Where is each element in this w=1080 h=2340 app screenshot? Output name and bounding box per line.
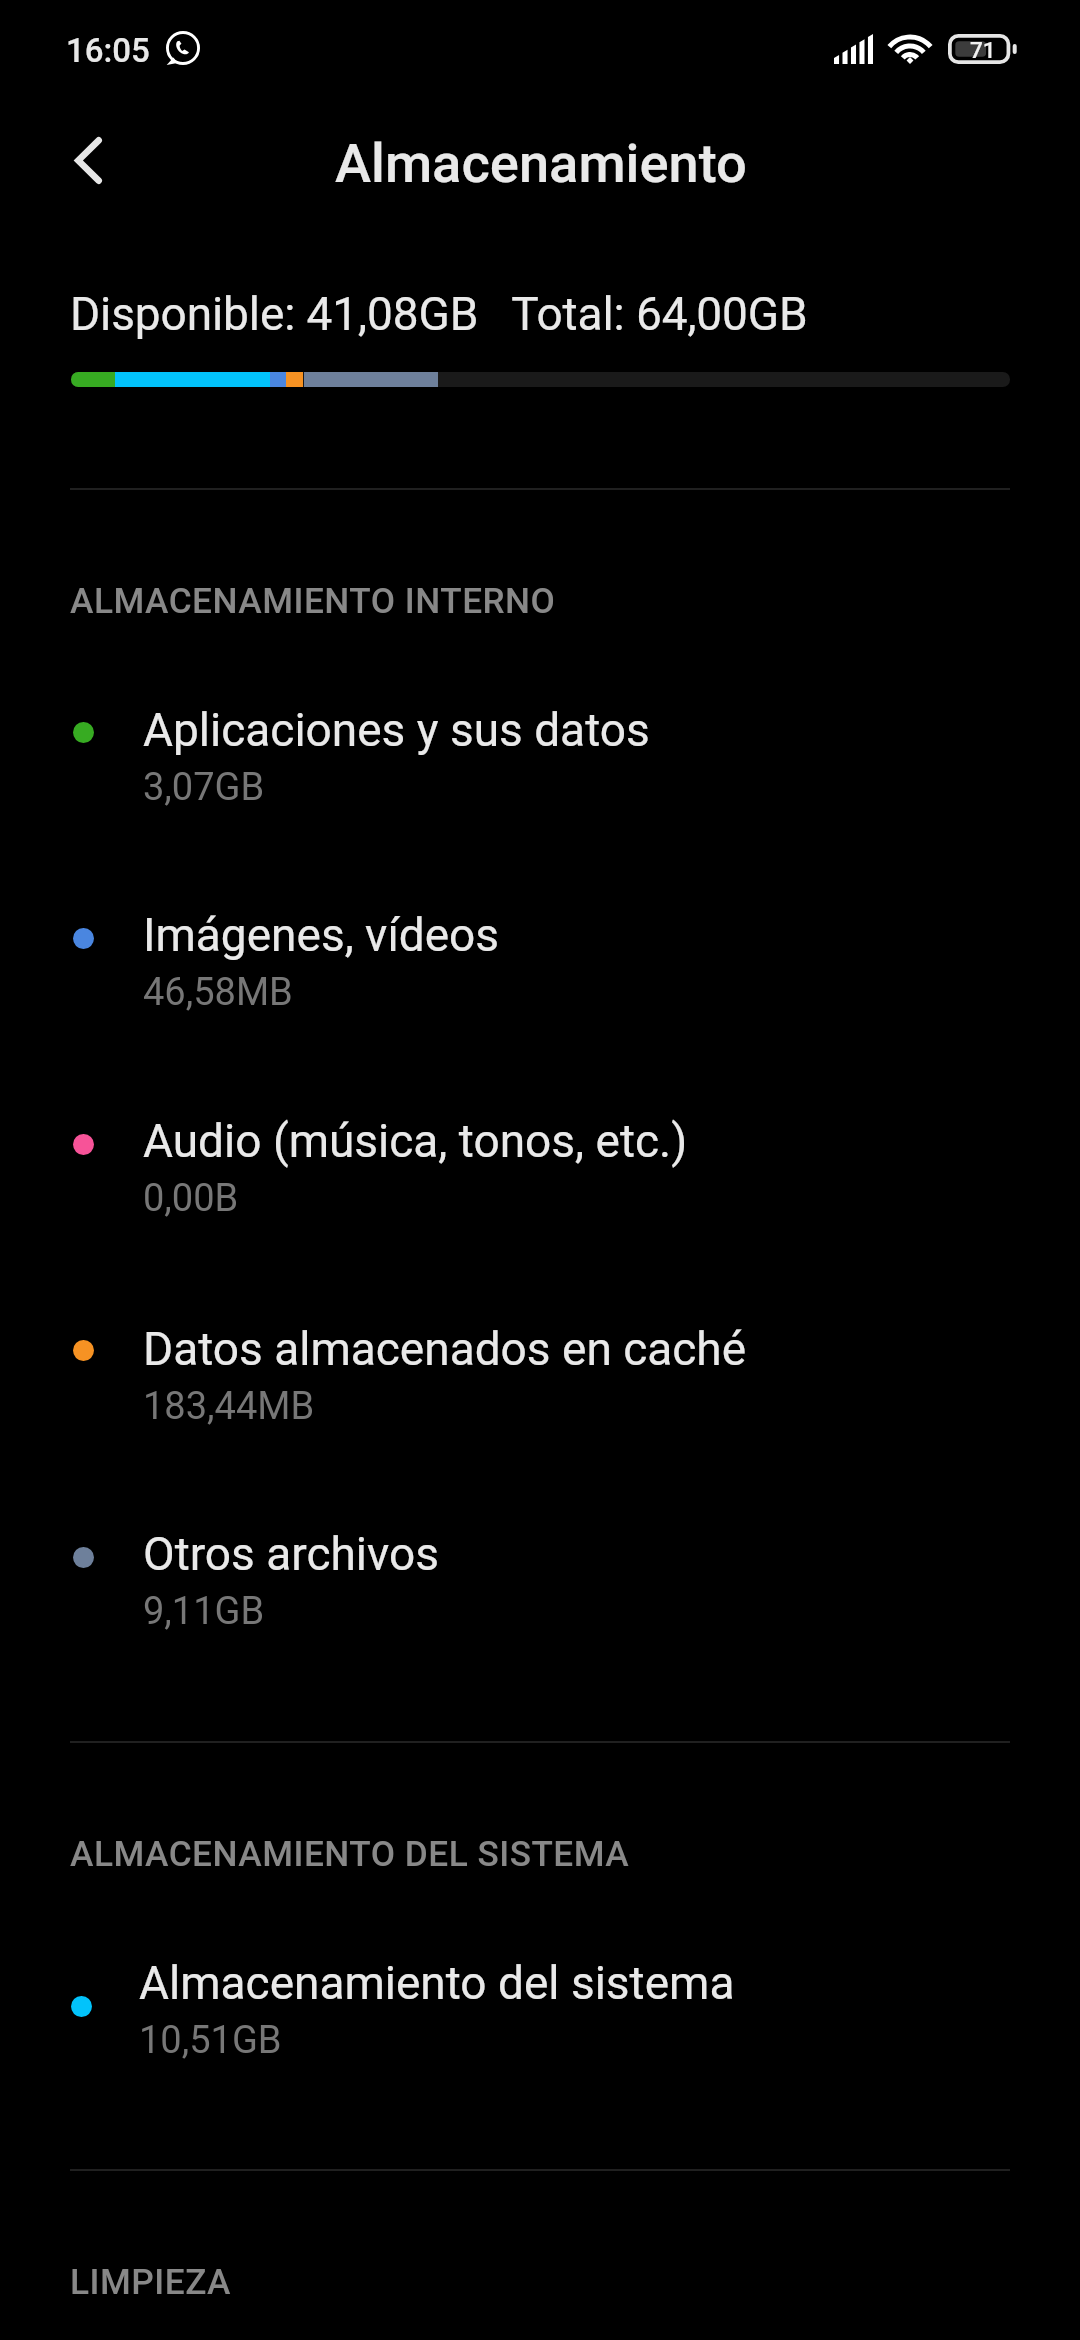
staticText: 71	[970, 37, 996, 63]
staticText: 9,11GB	[143, 1589, 265, 1634]
button[interactable]: Aplicaciones y sus datos	[0, 671, 1080, 811]
staticText: LIMPIEZA	[70, 2261, 231, 2302]
staticText: Aplicaciones y sus datos	[143, 703, 650, 757]
staticText: 16:05	[66, 31, 150, 70]
staticText: 0,00B	[143, 1176, 239, 1221]
staticText: 46,58MB	[143, 970, 293, 1015]
staticText: Audio (música, tonos, etc.)	[143, 1114, 688, 1168]
staticText: Otros archivos	[143, 1527, 439, 1581]
button[interactable]: Audio (música, tonos, etc.)	[0, 1082, 1080, 1222]
staticText: Almacenamiento	[335, 132, 747, 196]
staticText: 183,44MB	[143, 1384, 315, 1429]
staticText: Almacenamiento del sistema	[139, 1956, 735, 2010]
button[interactable]: Datos almacenados en caché	[0, 1290, 1080, 1430]
staticText: Imágenes, vídeos	[143, 908, 500, 962]
staticText: Datos almacenados en caché	[143, 1322, 747, 1376]
staticText: Disponible: 41,08GB Total: 64,00GB	[70, 287, 808, 341]
button[interactable]: Almacenamiento del sistema	[0, 1924, 1080, 2064]
button[interactable]: Otros archivos	[0, 1495, 1080, 1635]
staticText: 3,07GB	[143, 765, 265, 810]
staticText: ALMACENAMIENTO DEL SISTEMA	[70, 1833, 630, 1874]
button[interactable]: Imágenes, vídeos	[0, 876, 1080, 1016]
staticText: ALMACENAMIENTO INTERNO	[70, 580, 556, 621]
button[interactable]: Back	[38, 110, 138, 210]
staticText: 10,51GB	[139, 2018, 282, 2063]
